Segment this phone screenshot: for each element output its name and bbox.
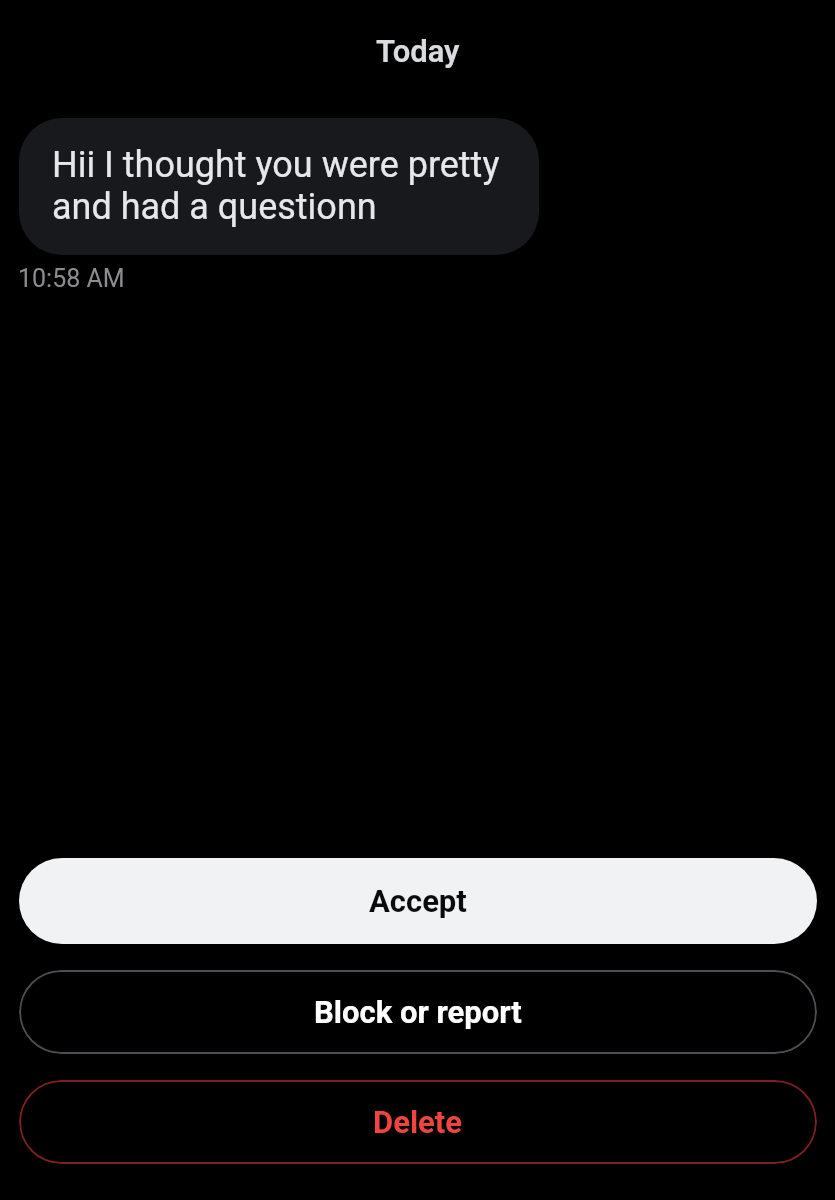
staticText: Block or report bbox=[314, 994, 522, 1030]
button[interactable]: Accept bbox=[19, 858, 817, 944]
staticText: Accept bbox=[369, 883, 467, 919]
staticText: Today bbox=[376, 33, 460, 69]
button[interactable]: Block or report bbox=[19, 970, 817, 1054]
staticText: Hii I thought you were pretty and had a … bbox=[52, 144, 515, 228]
staticText: 10:58 AM bbox=[18, 264, 125, 293]
button[interactable]: Delete bbox=[19, 1080, 817, 1164]
button[interactable]: Hii I thought you were pretty and had a … bbox=[19, 118, 539, 255]
staticText: Delete bbox=[373, 1104, 463, 1140]
